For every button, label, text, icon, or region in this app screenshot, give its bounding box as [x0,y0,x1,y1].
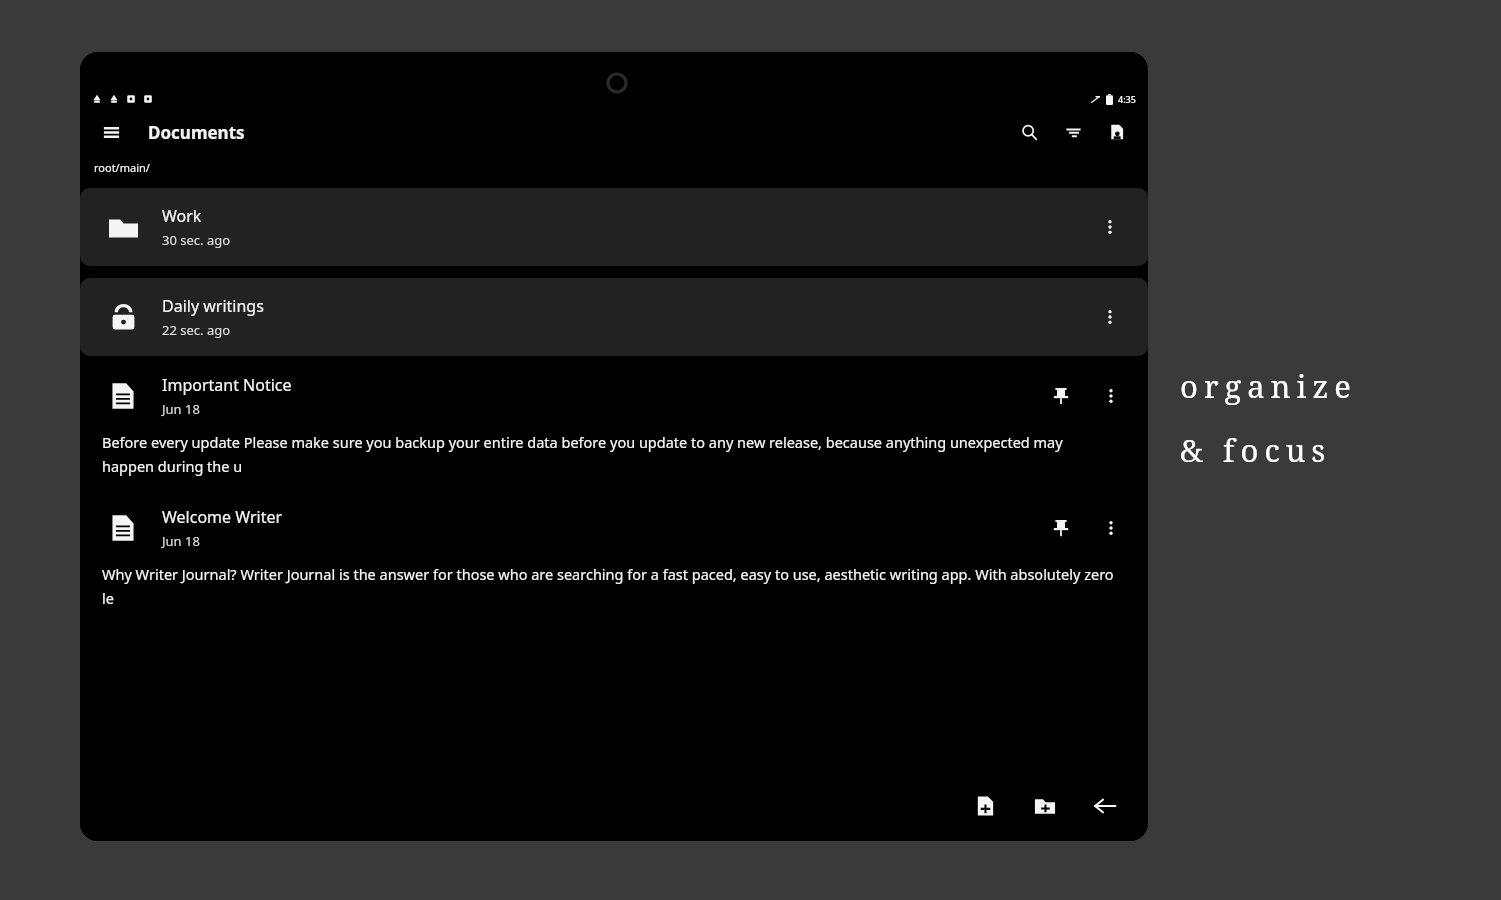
button[interactable]: Back [1084,785,1126,827]
staticText: Jun 18 [162,532,200,550]
staticText: Jun 18 [162,400,200,418]
button[interactable]: New note [964,785,1006,827]
staticText: & focus [1180,429,1332,471]
button[interactable]: Pin Welcome Writer [1042,509,1080,547]
staticText: 22 sec. ago [162,321,231,339]
staticText: Before every update Please make sure you… [102,432,1114,476]
button[interactable]: More options for Daily writings [1090,297,1130,337]
staticText: Welcome Writer [162,506,283,528]
button[interactable]: Search [1012,115,1046,149]
staticText: root/main/ [94,160,150,175]
button[interactable]: Open navigation menu [94,115,128,149]
staticText: organize [1180,365,1357,407]
button[interactable]: Daily writings [80,278,1148,356]
staticText: 4:35 [1118,93,1136,105]
button[interactable]: Welcome Writer [80,496,1148,614]
button[interactable]: More options for Important Notice [1092,377,1130,415]
staticText: Work [162,205,202,227]
button[interactable]: More options for Work [1090,207,1130,247]
staticText: Documents [148,121,245,144]
button[interactable]: Important Notice [80,364,1148,482]
button[interactable]: New folder [1024,785,1066,827]
staticText: Why Writer Journal? Writer Journal is th… [102,564,1114,608]
staticText: 30 sec. ago [162,231,231,249]
staticText: Important Notice [162,374,292,396]
button[interactable]: More options for Welcome Writer [1092,509,1130,547]
staticText: Daily writings [162,295,264,317]
button[interactable]: Work [80,188,1148,266]
button[interactable]: Save document [1100,115,1134,149]
button[interactable]: Pin Important Notice [1042,377,1080,415]
button[interactable]: Sort [1056,115,1090,149]
